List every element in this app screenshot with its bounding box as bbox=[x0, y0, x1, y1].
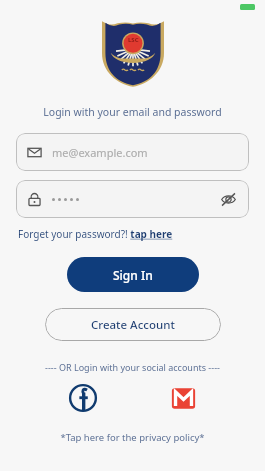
button[interactable]: Sign in with Facebook bbox=[66, 381, 100, 415]
staticText: Sign In bbox=[113, 267, 153, 283]
button[interactable]: Forget your password?! tap here bbox=[18, 227, 173, 241]
staticText: Forget your password?! tap here bbox=[18, 227, 173, 241]
staticText: Login with your email and password bbox=[43, 105, 222, 119]
button[interactable]: Sign In bbox=[67, 257, 199, 292]
staticText: ---- OR Login with your social accounts … bbox=[45, 361, 220, 373]
button[interactable]: Show password bbox=[16, 180, 249, 218]
staticText: *Tap here for the privacy policy* bbox=[60, 431, 205, 444]
staticText: LSC bbox=[128, 36, 139, 44]
button[interactable]: *Tap here for the privacy policy* bbox=[60, 431, 205, 444]
button[interactable]: Sign in with Gmail bbox=[166, 381, 200, 415]
staticText: me@example.com bbox=[52, 145, 148, 160]
staticText: Create Account bbox=[91, 317, 175, 333]
button[interactable]: me@example.com bbox=[16, 133, 249, 171]
button[interactable]: Show password bbox=[218, 189, 238, 209]
button[interactable]: Create Account bbox=[45, 308, 221, 341]
